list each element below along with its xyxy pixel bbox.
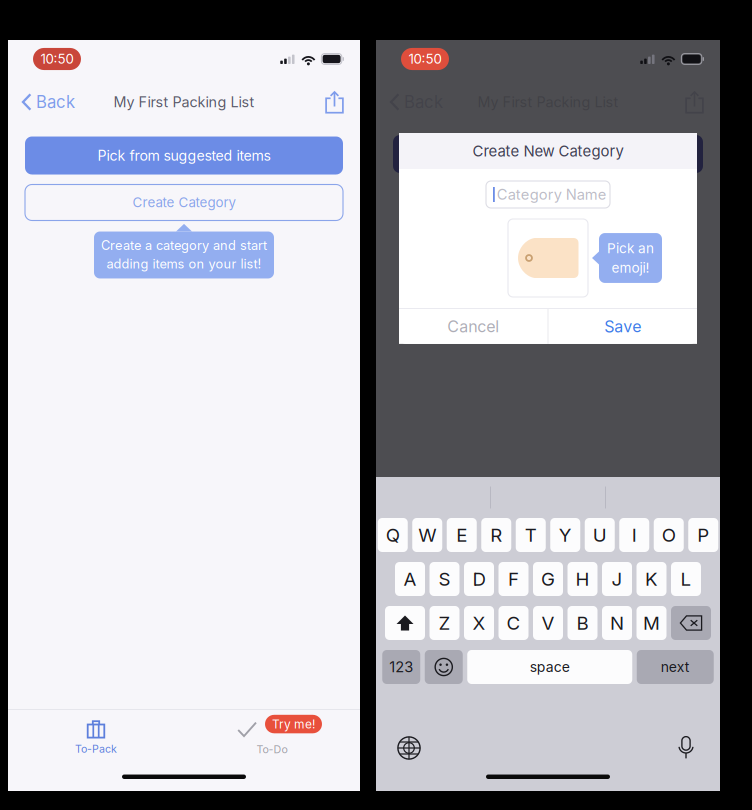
button[interactable]: H bbox=[567, 562, 597, 596]
button[interactable]: S bbox=[429, 562, 459, 596]
button[interactable]: Create Category bbox=[25, 184, 343, 220]
button[interactable]: Try me! bbox=[184, 710, 360, 762]
staticText: Pick from suggested items bbox=[97, 147, 270, 164]
button[interactable]: R bbox=[481, 518, 511, 552]
staticText: G bbox=[541, 568, 555, 590]
button[interactable]: V bbox=[533, 606, 563, 640]
button[interactable]: F bbox=[498, 562, 528, 596]
button[interactable]: A bbox=[395, 562, 425, 596]
staticText: K bbox=[645, 568, 658, 590]
staticText: adding items on your list! bbox=[106, 256, 261, 271]
staticText: Pick an bbox=[607, 240, 654, 256]
button[interactable]: Share bbox=[315, 86, 360, 117]
staticText: Cancel bbox=[447, 317, 499, 336]
staticText: R bbox=[490, 524, 502, 546]
staticText: O bbox=[662, 524, 676, 546]
button[interactable]: Pick from suggested items bbox=[25, 136, 343, 174]
button[interactable]: 123 bbox=[382, 650, 420, 684]
button[interactable]: X bbox=[464, 606, 494, 640]
staticText: S bbox=[438, 568, 450, 590]
staticText: 10:50 bbox=[408, 51, 441, 67]
button[interactable]: T bbox=[516, 518, 546, 552]
staticText: Back bbox=[36, 92, 75, 112]
staticText: B bbox=[576, 612, 588, 634]
button[interactable]: Cancel bbox=[399, 309, 548, 344]
button[interactable]: Y bbox=[550, 518, 580, 552]
staticText: Q bbox=[386, 524, 400, 546]
button[interactable]: W bbox=[412, 518, 442, 552]
staticText: My First Packing List bbox=[113, 93, 254, 111]
staticText: H bbox=[575, 568, 589, 590]
button[interactable]: B bbox=[567, 606, 597, 640]
button[interactable]: Q bbox=[378, 518, 408, 552]
staticText: D bbox=[472, 568, 485, 590]
button[interactable]: space bbox=[467, 650, 632, 684]
staticText: M bbox=[643, 612, 660, 634]
button[interactable]: E bbox=[447, 518, 477, 552]
button[interactable]: C bbox=[498, 606, 528, 640]
staticText: Category Name bbox=[497, 186, 607, 203]
button[interactable]: To-Pack bbox=[8, 710, 184, 761]
staticText: L bbox=[680, 568, 691, 590]
staticText: 10:50 bbox=[40, 51, 73, 67]
staticText: I bbox=[632, 524, 637, 546]
button[interactable]: M bbox=[636, 606, 666, 640]
button[interactable]: K bbox=[636, 562, 666, 596]
button[interactable]: Delete bbox=[671, 606, 711, 640]
staticText: N bbox=[610, 612, 624, 634]
staticText: W bbox=[418, 524, 436, 546]
button[interactable]: N bbox=[602, 606, 632, 640]
button[interactable]: L bbox=[671, 562, 701, 596]
button[interactable]: G bbox=[533, 562, 563, 596]
staticText: Back bbox=[404, 92, 443, 112]
button[interactable]: Dictate bbox=[677, 736, 720, 760]
staticText: F bbox=[508, 568, 519, 590]
button[interactable]: P bbox=[688, 518, 718, 552]
staticText: next bbox=[661, 658, 690, 675]
staticText: Y bbox=[559, 524, 572, 546]
button[interactable]: D bbox=[464, 562, 494, 596]
button[interactable]: J bbox=[602, 562, 632, 596]
staticText: To-Pack bbox=[75, 742, 117, 755]
staticText: E bbox=[456, 524, 467, 546]
staticText: Z bbox=[438, 612, 450, 634]
staticText: 123 bbox=[389, 658, 413, 676]
button[interactable]: Emoji bbox=[425, 650, 463, 684]
button[interactable]: U bbox=[585, 518, 615, 552]
staticText: Create New Category bbox=[472, 142, 623, 160]
staticText: Create a category and start bbox=[101, 237, 267, 253]
button[interactable]: Shift bbox=[385, 606, 425, 640]
staticText: My First Packing List bbox=[477, 93, 618, 111]
staticText: V bbox=[541, 612, 554, 634]
staticText: Try me! bbox=[272, 717, 315, 731]
staticText: A bbox=[403, 568, 416, 590]
staticText: C bbox=[506, 612, 520, 634]
button[interactable]: Z bbox=[429, 606, 459, 640]
staticText: U bbox=[593, 524, 607, 546]
staticText: Create Category bbox=[132, 194, 235, 210]
staticText: J bbox=[611, 568, 622, 590]
button[interactable]: Save bbox=[548, 309, 697, 344]
staticText: emoji! bbox=[611, 259, 649, 276]
staticText: X bbox=[472, 612, 485, 634]
staticText: P bbox=[697, 524, 709, 546]
staticText: space bbox=[530, 658, 570, 675]
button[interactable]: Switch keyboard bbox=[376, 736, 421, 760]
button[interactable]: O bbox=[654, 518, 684, 552]
button[interactable]: I bbox=[619, 518, 649, 552]
button[interactable]: next bbox=[637, 650, 714, 684]
staticText: T bbox=[525, 524, 537, 546]
staticText: To-Do bbox=[256, 743, 287, 756]
staticText: Save bbox=[604, 317, 641, 336]
button[interactable]: Back bbox=[8, 85, 85, 119]
